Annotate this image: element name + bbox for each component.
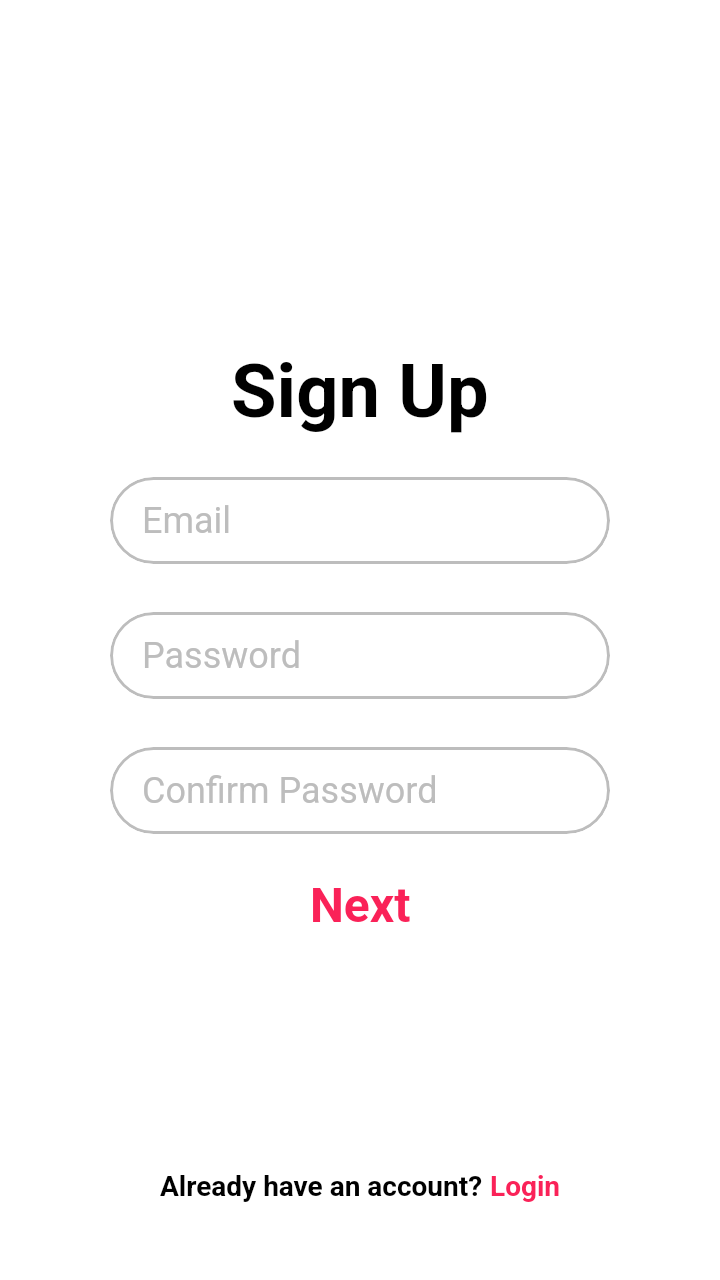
button[interactable]: Login	[490, 1170, 561, 1203]
staticText: Email	[142, 500, 232, 542]
staticText: Login	[490, 1170, 561, 1203]
button[interactable]: Confirm Password	[110, 747, 610, 834]
button[interactable]: Password	[110, 612, 610, 699]
staticText: Next	[310, 877, 411, 933]
staticText: Already have an account?	[160, 1170, 490, 1203]
staticText: Password	[142, 635, 302, 677]
button[interactable]: Next	[290, 871, 431, 939]
button[interactable]: Email	[110, 477, 610, 564]
staticText: Confirm Password	[142, 770, 438, 812]
staticText: Sign Up	[231, 348, 489, 435]
